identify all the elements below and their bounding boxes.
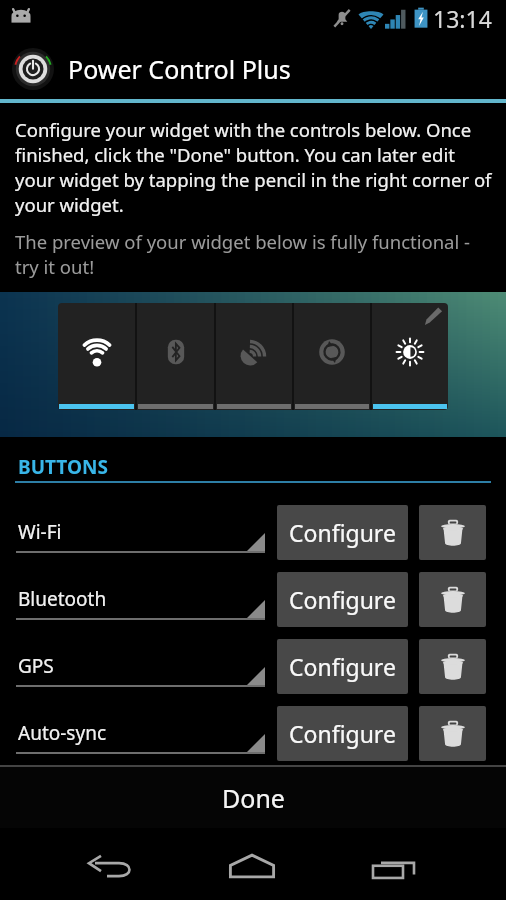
staticText: Configure: [289, 651, 396, 682]
button[interactable]: Delete: [419, 505, 486, 560]
button[interactable]: [372, 303, 448, 410]
button[interactable]: Auto-sync: [0, 706, 268, 761]
button[interactable]: Done: [0, 767, 506, 828]
button[interactable]: Wi-Fi: [0, 505, 268, 560]
staticText: BUTTONS: [18, 454, 108, 480]
button[interactable]: Home: [182, 828, 322, 900]
button[interactable]: Configure: [277, 639, 408, 694]
staticText: Configure: [289, 718, 396, 749]
button[interactable]: Delete: [419, 572, 486, 627]
button[interactable]: Configure: [277, 706, 408, 761]
staticText: Configure: [289, 517, 396, 548]
staticText: Configure: [289, 584, 396, 615]
button[interactable]: Recent apps: [325, 828, 465, 900]
staticText: Done: [222, 781, 285, 815]
staticText: Configure your widget with the controls …: [15, 117, 495, 217]
staticText: The preview of your widget below is full…: [15, 229, 495, 279]
button[interactable]: Power Control Plus: [0, 38, 506, 100]
button[interactable]: [216, 303, 292, 410]
button[interactable]: Delete: [419, 639, 486, 694]
button[interactable]: Configure: [277, 572, 408, 627]
button[interactable]: GPS: [0, 639, 268, 694]
button[interactable]: Configure: [277, 505, 408, 560]
button[interactable]: [58, 303, 135, 410]
button[interactable]: Bluetooth: [0, 572, 268, 627]
staticText: GPS: [18, 653, 54, 679]
button[interactable]: Back: [42, 828, 182, 900]
staticText: Auto-sync: [18, 720, 107, 746]
staticText: Power Control Plus: [68, 52, 291, 86]
button[interactable]: Delete: [419, 706, 486, 761]
staticText: 13:14: [433, 3, 492, 34]
staticText: Wi-Fi: [18, 519, 62, 545]
button[interactable]: [137, 303, 214, 410]
button[interactable]: [294, 303, 370, 410]
staticText: Bluetooth: [18, 586, 107, 612]
